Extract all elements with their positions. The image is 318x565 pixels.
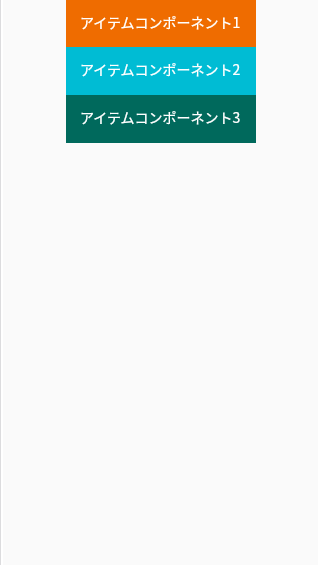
button[interactable]: アイテムコンポーネント2: [66, 47, 256, 95]
staticText: アイテムコンポーネント3: [80, 107, 241, 127]
staticText: アイテムコンポーネント2: [80, 59, 241, 79]
staticText: アイテムコンポーネント1: [80, 12, 241, 32]
button[interactable]: アイテムコンポーネント1: [66, 0, 256, 47]
button[interactable]: アイテムコンポーネント3: [66, 95, 256, 143]
